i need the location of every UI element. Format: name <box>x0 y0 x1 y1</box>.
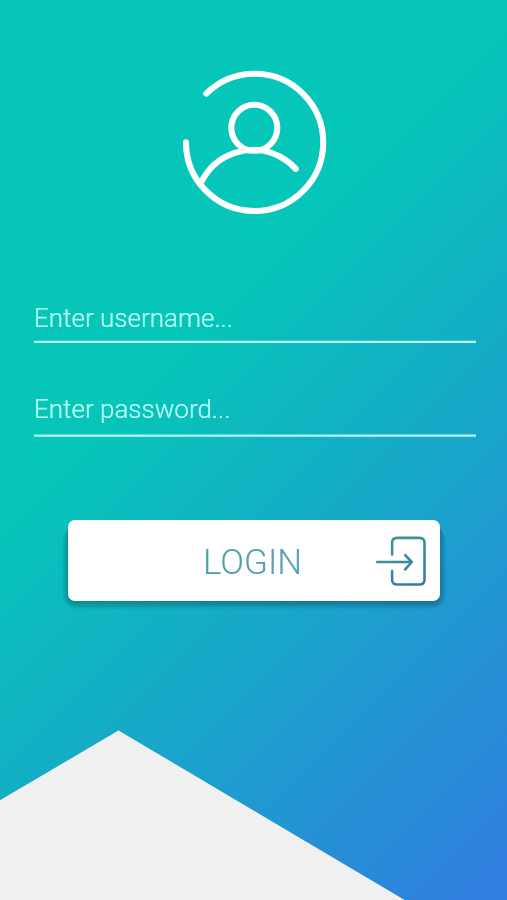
other: User account avatar <box>180 68 328 216</box>
staticText: LOGIN <box>203 542 303 583</box>
button[interactable]: Enter username... <box>34 296 476 344</box>
staticText: Enter password... <box>34 394 231 424</box>
staticText: Enter username... <box>34 303 234 333</box>
button[interactable]: Enter password... <box>34 387 476 435</box>
button[interactable]: LOGIN <box>68 520 440 601</box>
